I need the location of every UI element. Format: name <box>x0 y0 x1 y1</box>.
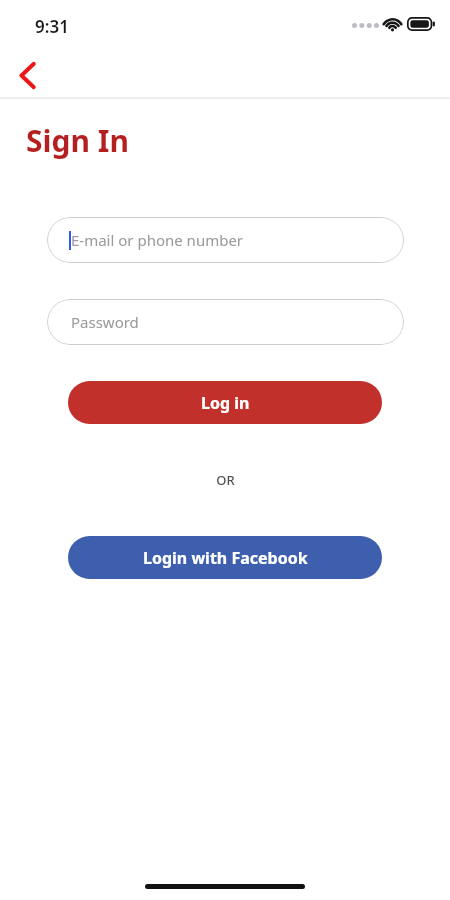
button[interactable]: Back <box>0 52 54 98</box>
button[interactable]: Log in <box>68 381 382 424</box>
staticText: OR <box>216 471 235 489</box>
staticText: Log in <box>201 392 250 414</box>
staticText: Password <box>71 312 139 332</box>
staticText: Login with Facebook <box>143 547 308 569</box>
staticText: Sign In <box>26 120 129 161</box>
button[interactable]: Login with Facebook <box>68 536 382 579</box>
staticText: E-mail or phone number <box>71 230 244 250</box>
button[interactable]: E-mail or phone number <box>47 217 404 263</box>
button[interactable]: Password <box>47 299 404 345</box>
staticText: 9:31 <box>35 15 69 38</box>
